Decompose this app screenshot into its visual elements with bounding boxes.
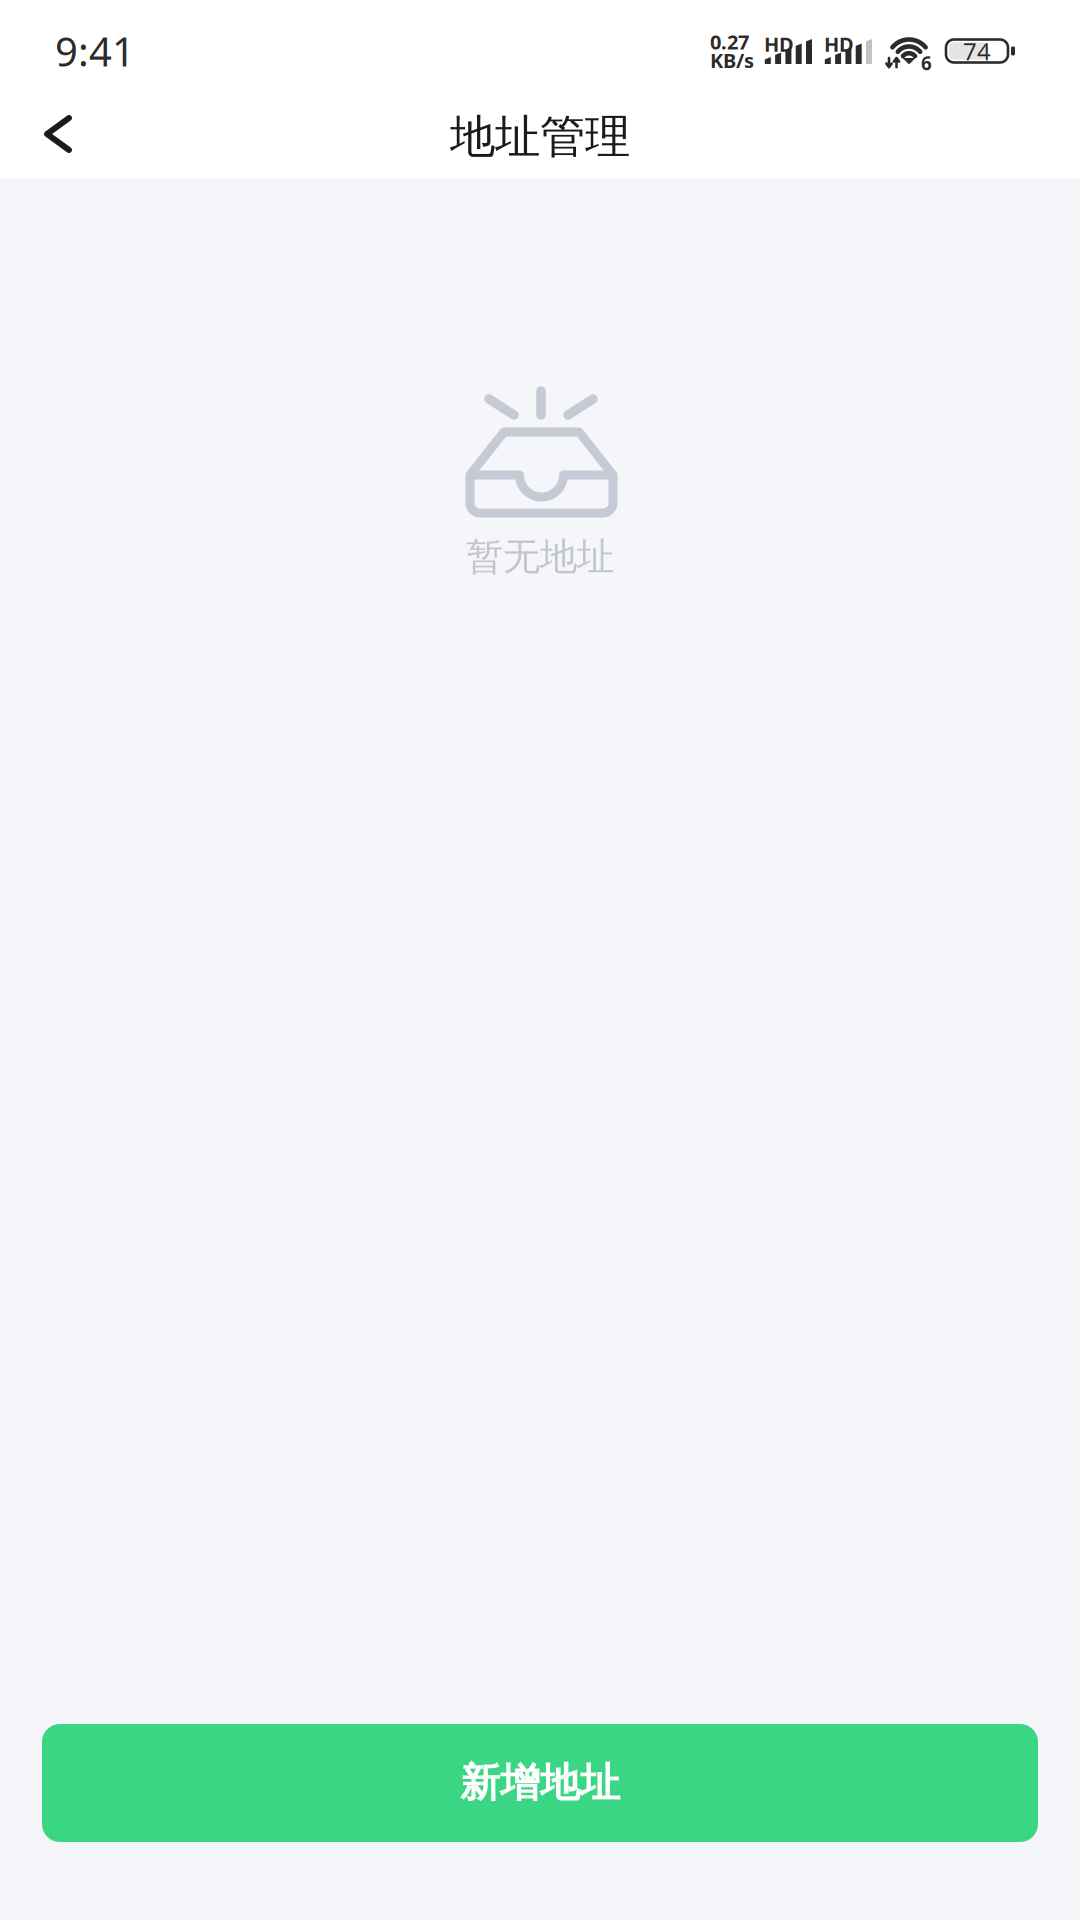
staticText: HD (824, 31, 854, 57)
button[interactable]: Back (15, 96, 101, 178)
staticText: 暂无地址 (466, 534, 614, 580)
staticText: 74 (963, 35, 991, 67)
staticText: 9:41 (55, 24, 135, 77)
staticText: HD (764, 31, 794, 57)
staticText: 6 (921, 51, 932, 75)
staticText: 0.27 (710, 28, 749, 55)
staticText: 新增地址 (460, 1758, 620, 1807)
staticText: KB/s (710, 47, 754, 74)
staticText: 地址管理 (450, 109, 630, 165)
button[interactable]: 新增地址 (42, 1724, 1038, 1842)
